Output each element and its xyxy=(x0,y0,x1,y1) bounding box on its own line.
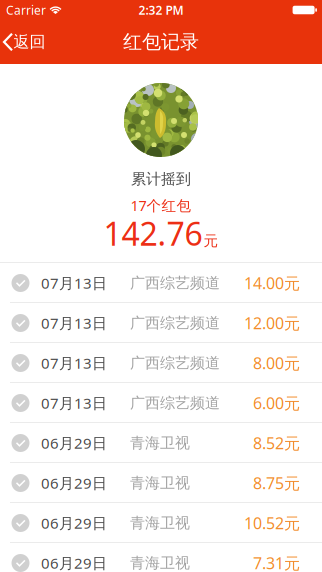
staticText: 142.76 xyxy=(103,212,202,255)
staticText: Carrier xyxy=(6,2,46,18)
staticText: 青海卫视 xyxy=(130,554,190,572)
button[interactable]: 07月13日 xyxy=(0,383,322,423)
staticText: 广西综艺频道 xyxy=(130,394,220,412)
staticText: 返回 xyxy=(13,32,45,52)
staticText: 8.75元 xyxy=(253,472,300,494)
staticText: 广西综艺频道 xyxy=(130,354,220,372)
staticText: 07月13日 xyxy=(41,393,107,413)
staticText: 14.00元 xyxy=(244,272,300,294)
staticText: 06月29日 xyxy=(41,513,107,533)
staticText: 07月13日 xyxy=(41,313,107,333)
staticText: 8.52元 xyxy=(253,432,300,454)
staticText: 06月29日 xyxy=(41,553,107,572)
button[interactable]: 06月29日 xyxy=(0,463,322,503)
button[interactable]: 06月29日 xyxy=(0,543,322,572)
staticText: 广西综艺频道 xyxy=(130,274,220,292)
staticText: 17个红包 xyxy=(130,195,191,215)
button[interactable]: 返回 xyxy=(0,20,53,64)
staticText: 广西综艺频道 xyxy=(130,314,220,332)
staticText: 红包记录 xyxy=(123,30,199,54)
staticText: 12.00元 xyxy=(244,312,300,334)
staticText: 青海卫视 xyxy=(130,514,190,532)
staticText: 06月29日 xyxy=(41,433,107,453)
button[interactable]: 06月29日 xyxy=(0,503,322,543)
staticText: 06月29日 xyxy=(41,473,107,493)
button[interactable]: 07月13日 xyxy=(0,263,322,303)
staticText: 青海卫视 xyxy=(130,434,190,452)
button[interactable]: 06月29日 xyxy=(0,423,322,463)
staticText: 10.52元 xyxy=(244,512,300,534)
staticText: 青海卫视 xyxy=(130,474,190,492)
button[interactable]: 07月13日 xyxy=(0,303,322,343)
staticText: 2:32 PM xyxy=(138,2,183,18)
button[interactable]: 07月13日 xyxy=(0,343,322,383)
staticText: 6.00元 xyxy=(253,392,300,414)
staticText: 累计摇到 xyxy=(131,169,191,188)
staticText: 07月13日 xyxy=(41,273,107,293)
staticText: 元 xyxy=(203,232,218,250)
staticText: 07月13日 xyxy=(41,353,107,373)
staticText: 7.31元 xyxy=(253,552,300,572)
staticText: 8.00元 xyxy=(253,352,300,374)
